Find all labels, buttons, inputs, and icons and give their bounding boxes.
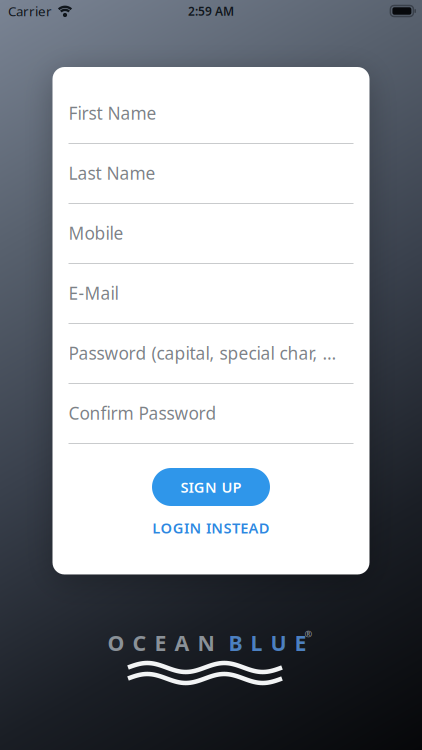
staticText: LOGIN INSTEAD xyxy=(152,518,270,537)
button[interactable]: LOGIN INSTEAD xyxy=(152,518,270,537)
staticText: E-Mail xyxy=(68,281,118,304)
staticText: Confirm Password xyxy=(68,401,216,424)
textField[interactable]: E-Mail xyxy=(68,282,353,342)
staticText: OCEAN xyxy=(107,629,228,657)
staticText: ® xyxy=(304,628,312,640)
staticText: 2:59 AM xyxy=(188,3,234,19)
staticText: Last Name xyxy=(68,161,155,184)
textField[interactable]: First Name xyxy=(68,102,353,162)
textField[interactable]: Last Name xyxy=(68,162,353,222)
textField[interactable]: Confirm Password xyxy=(68,402,353,462)
staticText: First Name xyxy=(68,101,156,124)
textField[interactable]: Mobile xyxy=(68,222,353,282)
staticText: SIGN UP xyxy=(180,477,242,497)
button[interactable]: SIGN UP xyxy=(152,468,270,506)
textField[interactable]: Password (capital, special char, … xyxy=(68,342,353,402)
staticText: BLUE xyxy=(228,629,306,657)
staticText: Mobile xyxy=(68,221,123,244)
staticText: Password (capital, special char, … xyxy=(68,341,336,364)
staticText: Carrier xyxy=(8,2,52,20)
